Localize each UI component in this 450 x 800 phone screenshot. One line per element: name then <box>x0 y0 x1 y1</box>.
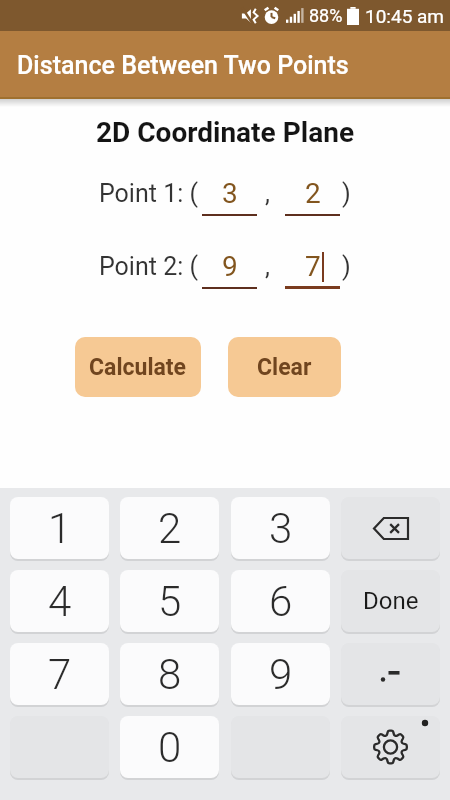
staticText: 2 <box>158 504 182 553</box>
staticText: 2 <box>305 177 321 210</box>
staticText: Distance Between Two Points <box>17 51 349 80</box>
staticText: Calculate <box>89 354 187 381</box>
button[interactable]: 7 <box>10 643 109 705</box>
staticText: ) <box>342 252 351 281</box>
button[interactable]: Calculate <box>75 337 201 397</box>
staticText: Point 2: ( <box>99 252 198 281</box>
staticText: Point 1: ( <box>99 179 198 208</box>
button[interactable]: 0 <box>120 716 219 778</box>
staticText: , <box>265 179 270 208</box>
button[interactable] <box>341 497 440 559</box>
staticText: 9 <box>269 650 293 699</box>
staticText: 10:45 am <box>365 5 445 27</box>
button[interactable]: 3 <box>231 497 330 559</box>
button[interactable] <box>341 716 440 778</box>
staticText: Done <box>363 587 419 615</box>
staticText: 7 <box>48 650 72 699</box>
button[interactable]: Clear <box>228 337 341 397</box>
button[interactable] <box>341 643 440 705</box>
button[interactable]: 1 <box>10 497 109 559</box>
staticText: 8 <box>158 650 182 699</box>
staticText: 3 <box>222 177 238 210</box>
staticText: , <box>265 252 270 281</box>
button[interactable]: 8 <box>120 643 219 705</box>
staticText: ) <box>342 179 351 208</box>
button[interactable]: 4 <box>10 570 109 632</box>
staticText: 2D Coordinate Plane <box>96 116 355 149</box>
staticText: 1 <box>48 504 72 553</box>
button[interactable]: 6 <box>231 570 330 632</box>
staticText: 0 <box>158 723 182 772</box>
staticText: 9 <box>222 250 238 283</box>
staticText: Clear <box>257 354 312 381</box>
button[interactable]: 9 <box>231 643 330 705</box>
staticText: 88% <box>309 5 343 26</box>
button[interactable]: Distance Between Two Points <box>0 31 450 99</box>
staticText: 4 <box>48 577 72 626</box>
staticText: 6 <box>269 577 293 626</box>
staticText: 5 <box>158 577 182 626</box>
staticText: 3 <box>269 504 293 553</box>
button[interactable]: Done <box>341 570 440 632</box>
staticText: 7 <box>305 250 321 283</box>
button[interactable]: 2 <box>120 497 219 559</box>
button[interactable]: 5 <box>120 570 219 632</box>
